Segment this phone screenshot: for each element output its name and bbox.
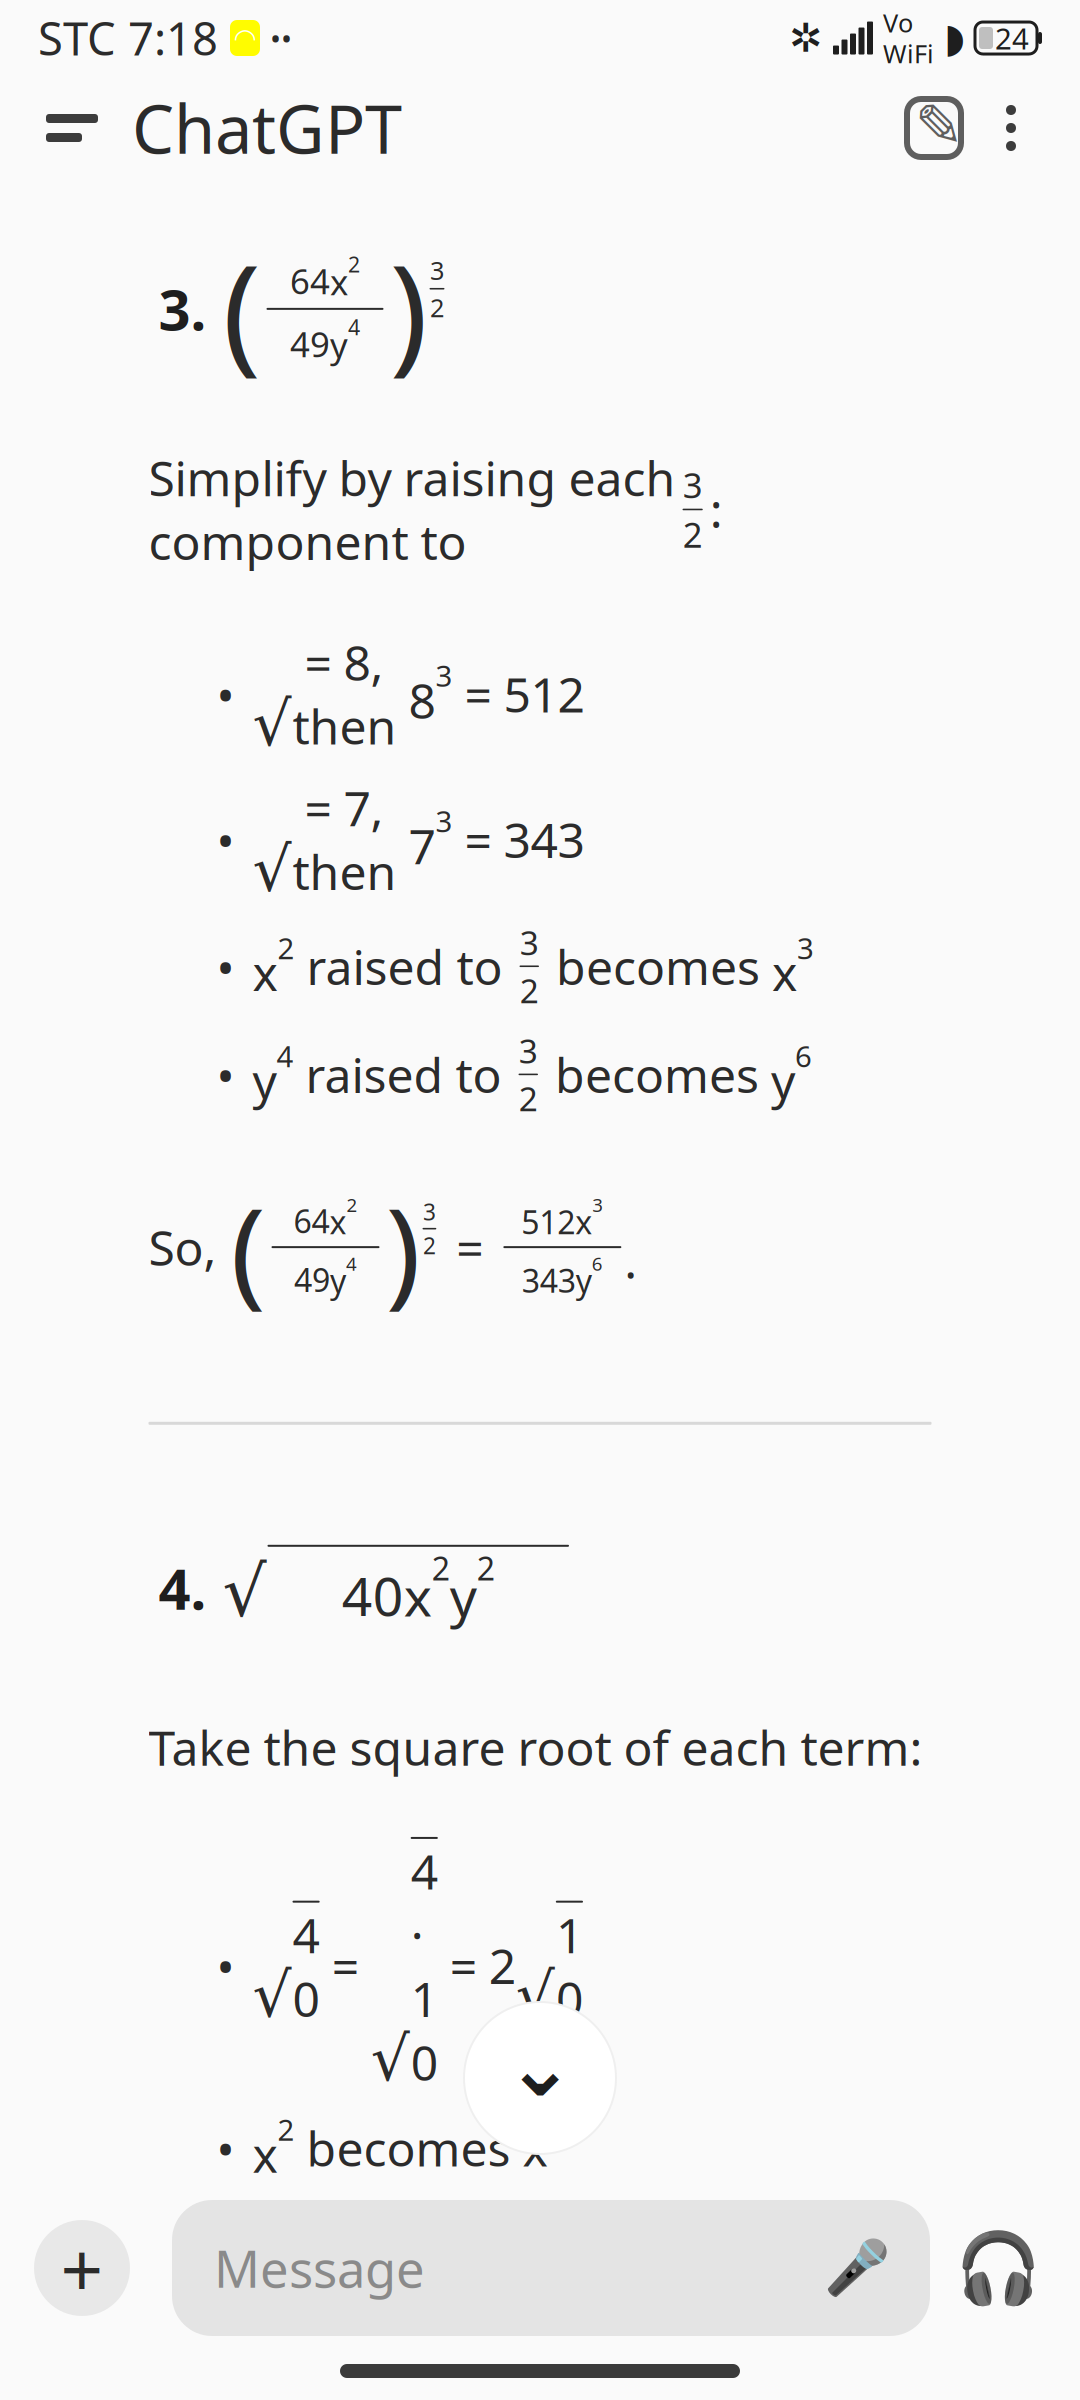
- staticText: 2: [277, 928, 294, 967]
- staticText: 2: [520, 968, 539, 1012]
- staticText: 7: [408, 814, 435, 877]
- button[interactable]: ChatGPT: [110, 70, 402, 186]
- staticText: y: [252, 1049, 276, 1112]
- staticText: WiFi: [883, 36, 934, 70]
- staticText: 3: [435, 656, 452, 695]
- staticText: y: [330, 322, 348, 368]
- staticText: x: [252, 2122, 277, 2186]
- staticText: 64: [290, 258, 330, 304]
- staticText: 🎧: [955, 2228, 1041, 2308]
- staticText: ✎: [914, 93, 963, 159]
- staticText: = 343: [452, 808, 584, 871]
- staticText: 4 · 10: [411, 1839, 438, 2094]
- staticText: 3: [435, 801, 452, 840]
- staticText: x: [575, 1201, 592, 1243]
- staticText: x: [330, 259, 348, 305]
- staticText: 512: [521, 1200, 575, 1243]
- staticText: So,: [148, 1215, 216, 1279]
- staticText: y: [771, 1049, 795, 1112]
- staticText: 3: [683, 462, 703, 508]
- staticText: raised to: [294, 934, 514, 998]
- staticText: = 8, then: [292, 630, 408, 758]
- staticText: 3: [430, 253, 444, 287]
- staticText: x: [327, 2368, 352, 2400]
- staticText: x: [522, 2116, 547, 2180]
- button[interactable]: Menu: [34, 90, 110, 166]
- staticText: Message: [214, 2234, 425, 2302]
- staticText: 3: [592, 1192, 603, 1217]
- button[interactable]: New chat: [892, 86, 976, 170]
- staticText: (: [222, 224, 260, 394]
- staticText: 49: [290, 321, 330, 367]
- staticText: ✲: [789, 15, 823, 61]
- staticText: 64: [293, 1200, 329, 1242]
- staticText: y: [576, 1259, 592, 1302]
- staticText: 2: [423, 1230, 436, 1260]
- staticText: 40: [342, 1560, 404, 1631]
- staticText: 2: [393, 2356, 410, 2395]
- staticText: √: [222, 1552, 266, 1631]
- staticText: √: [252, 835, 291, 904]
- staticText: •: [216, 662, 234, 726]
- staticText: Simplify by raising each component to: [148, 446, 675, 573]
- staticText: 3: [423, 1197, 436, 1227]
- staticText: 4: [346, 1251, 357, 1276]
- staticText: x: [329, 1201, 346, 1243]
- staticText: becomes: [293, 2208, 521, 2272]
- staticText: 3: [519, 1028, 538, 1073]
- button[interactable]: Add attachment: [34, 2218, 130, 2318]
- staticText: 6: [592, 1251, 603, 1276]
- staticText: y: [330, 1259, 346, 1302]
- staticText: 2: [277, 2110, 294, 2149]
- staticText: 4: [276, 1036, 293, 1075]
- staticText: 4: [348, 313, 360, 341]
- staticText: 40: [293, 1903, 320, 2030]
- staticText: becomes: [544, 934, 772, 998]
- button[interactable]: Voice mode: [950, 2220, 1046, 2316]
- staticText: y: [450, 1560, 477, 1631]
- staticText: Take the square root of each term:: [148, 1715, 922, 1779]
- staticText: √: [516, 1961, 555, 2030]
- staticText: 24: [995, 18, 1029, 57]
- staticText: •: [216, 2116, 234, 2180]
- staticText: ◗: [944, 15, 965, 61]
- staticText: √: [547, 2358, 586, 2400]
- staticText: 3: [520, 920, 539, 964]
- staticText: 8: [408, 668, 435, 732]
- staticText: √: [252, 689, 291, 759]
- staticText: .: [733, 2361, 746, 2400]
- staticText: 2: [519, 1076, 538, 1120]
- staticText: ): [389, 224, 427, 394]
- staticText: = 7, then: [292, 776, 408, 903]
- staticText: 2: [432, 1547, 450, 1589]
- staticText: 2: [683, 511, 703, 557]
- staticText: •: [216, 2208, 234, 2272]
- staticText: 343: [522, 1259, 576, 1302]
- button[interactable]: Message: [172, 2200, 930, 2336]
- staticText: = 2: [438, 1934, 516, 1997]
- button[interactable]: More options: [976, 86, 1046, 170]
- staticText: =: [444, 1215, 495, 1279]
- button[interactable]: Scroll to bottom: [464, 2002, 616, 2154]
- staticText: = 2xy: [420, 2361, 547, 2400]
- staticText: ): [385, 1169, 420, 1325]
- staticText: ◠: [233, 23, 256, 53]
- staticText: STC 7:18: [38, 8, 218, 68]
- staticText: y: [369, 2368, 393, 2400]
- staticText: 2: [352, 2356, 369, 2395]
- staticText: y: [252, 2214, 276, 2278]
- staticText: 4.: [158, 1551, 206, 1625]
- staticText: 3.: [158, 272, 206, 346]
- staticText: 6: [795, 1036, 812, 1075]
- staticText: .: [624, 1228, 637, 1292]
- staticText: •: [216, 1934, 234, 1997]
- staticText: :: [710, 478, 723, 541]
- staticText: •: [216, 808, 234, 871]
- staticText: becomes: [294, 2116, 522, 2180]
- staticText: ChatGPT: [132, 84, 402, 172]
- staticText: •: [216, 1042, 234, 1106]
